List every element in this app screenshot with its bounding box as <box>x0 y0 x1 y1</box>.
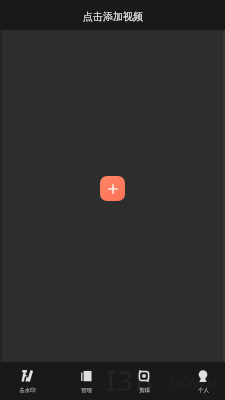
staticText: 管理 <box>81 387 92 394</box>
button[interactable]: 剪辑 <box>122 362 166 400</box>
button[interactable]: 去水印 <box>5 362 49 400</box>
button[interactable]: 管理 <box>64 362 108 400</box>
staticText: I3B <box>106 362 186 399</box>
button[interactable]: 添加视频 <box>100 176 125 201</box>
button[interactable]: 个人 <box>181 362 225 400</box>
staticText: 剪辑 <box>139 387 150 394</box>
staticText: 去水印 <box>19 387 36 394</box>
staticText: 点击添加视频 <box>83 10 143 23</box>
staticText: 个人 <box>198 387 209 394</box>
staticText: DOWN <box>170 373 225 392</box>
